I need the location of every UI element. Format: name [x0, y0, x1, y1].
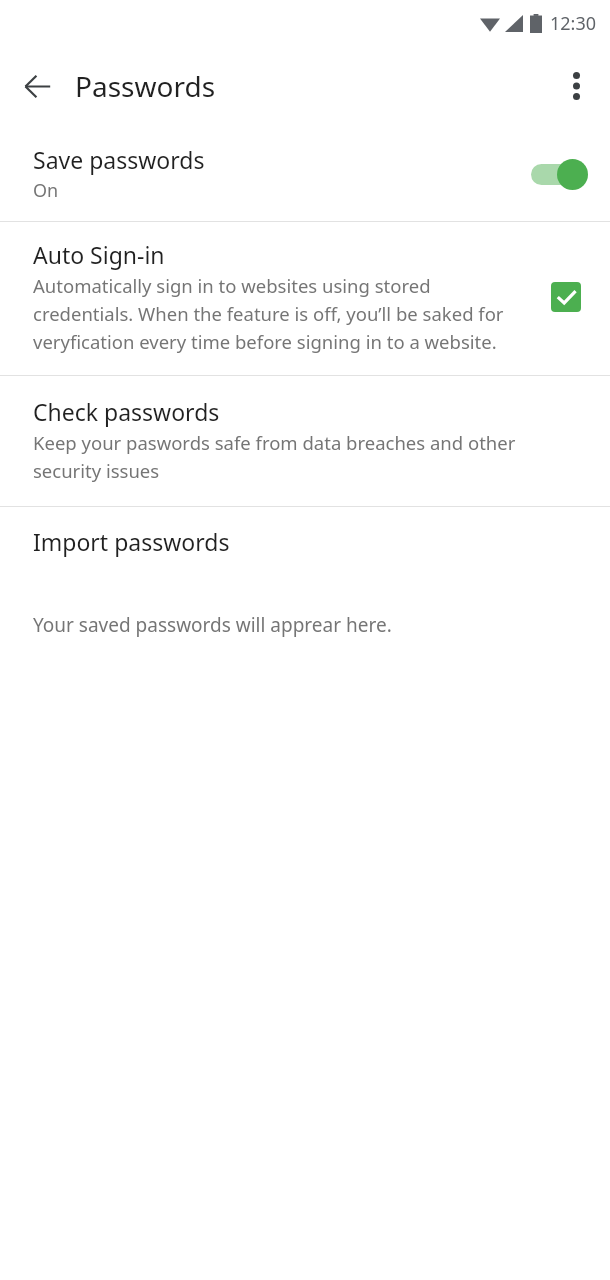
staticText: Save passwords	[33, 144, 205, 175]
button[interactable]: Save passwords	[530, 156, 588, 192]
button[interactable]: More options	[551, 61, 601, 111]
staticText: Import passwords	[33, 526, 230, 557]
staticText: 12:30	[550, 11, 597, 36]
staticText: Auto Sign-in	[33, 239, 165, 270]
staticText: Keep your paswords safe from data breach…	[33, 430, 588, 483]
button[interactable]: Save passwords	[0, 126, 610, 221]
button[interactable]: Import passwords	[0, 507, 610, 575]
staticText: On	[33, 178, 59, 203]
staticText: Your saved passwords will apprear here.	[33, 612, 392, 638]
button[interactable]: Check passwords	[0, 376, 610, 506]
staticText: Automatically sign in to websites using …	[33, 273, 530, 354]
staticText: Check passwords	[33, 396, 220, 427]
button[interactable]: Auto Sign-in	[544, 275, 588, 319]
button[interactable]: Back	[12, 61, 62, 111]
button[interactable]: Auto Sign-in	[0, 222, 610, 375]
staticText: Passwords	[75, 67, 216, 105]
